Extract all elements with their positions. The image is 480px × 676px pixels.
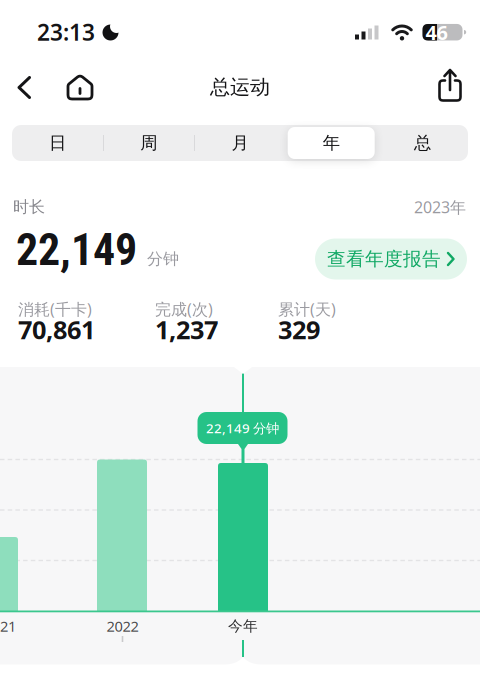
staticText: 1,237 (155, 313, 218, 346)
button[interactable]: 月 (196, 126, 283, 160)
button[interactable]: 查看年度报告 (315, 238, 467, 279)
staticText: 完成(次) (155, 298, 213, 320)
staticText: 2022 (106, 616, 138, 636)
staticText: 日 (49, 132, 66, 154)
staticText: 周 (140, 132, 157, 154)
button[interactable]: 总 (379, 126, 466, 160)
staticText: 分钟 (147, 249, 179, 269)
staticText: 累计(天) (278, 298, 336, 320)
staticText: 时长 (13, 197, 45, 217)
button[interactable] (60, 67, 100, 107)
staticText: 46 (425, 19, 447, 45)
staticText: 总 (414, 132, 431, 154)
staticText: 2023年 (414, 196, 466, 218)
staticText: 年 (323, 132, 340, 154)
button[interactable]: 日 (14, 126, 101, 160)
button[interactable] (428, 63, 472, 107)
button[interactable] (6, 69, 42, 105)
button[interactable]: 年 (288, 126, 375, 160)
staticText: 消耗(千卡) (18, 298, 92, 320)
staticText: 查看年度报告 (327, 247, 441, 270)
staticText: 22,149 (16, 224, 137, 276)
staticText: 70,861 (18, 313, 95, 346)
staticText: 329 (278, 313, 320, 346)
staticText: 月 (231, 132, 248, 154)
staticText: 总运动 (210, 75, 270, 99)
button[interactable]: 周 (105, 126, 192, 160)
staticText: 今年 (228, 617, 258, 635)
staticText: 22,149 分钟 (206, 419, 279, 437)
staticText: 2021 (0, 616, 16, 636)
staticText: 23:13 (37, 17, 95, 47)
